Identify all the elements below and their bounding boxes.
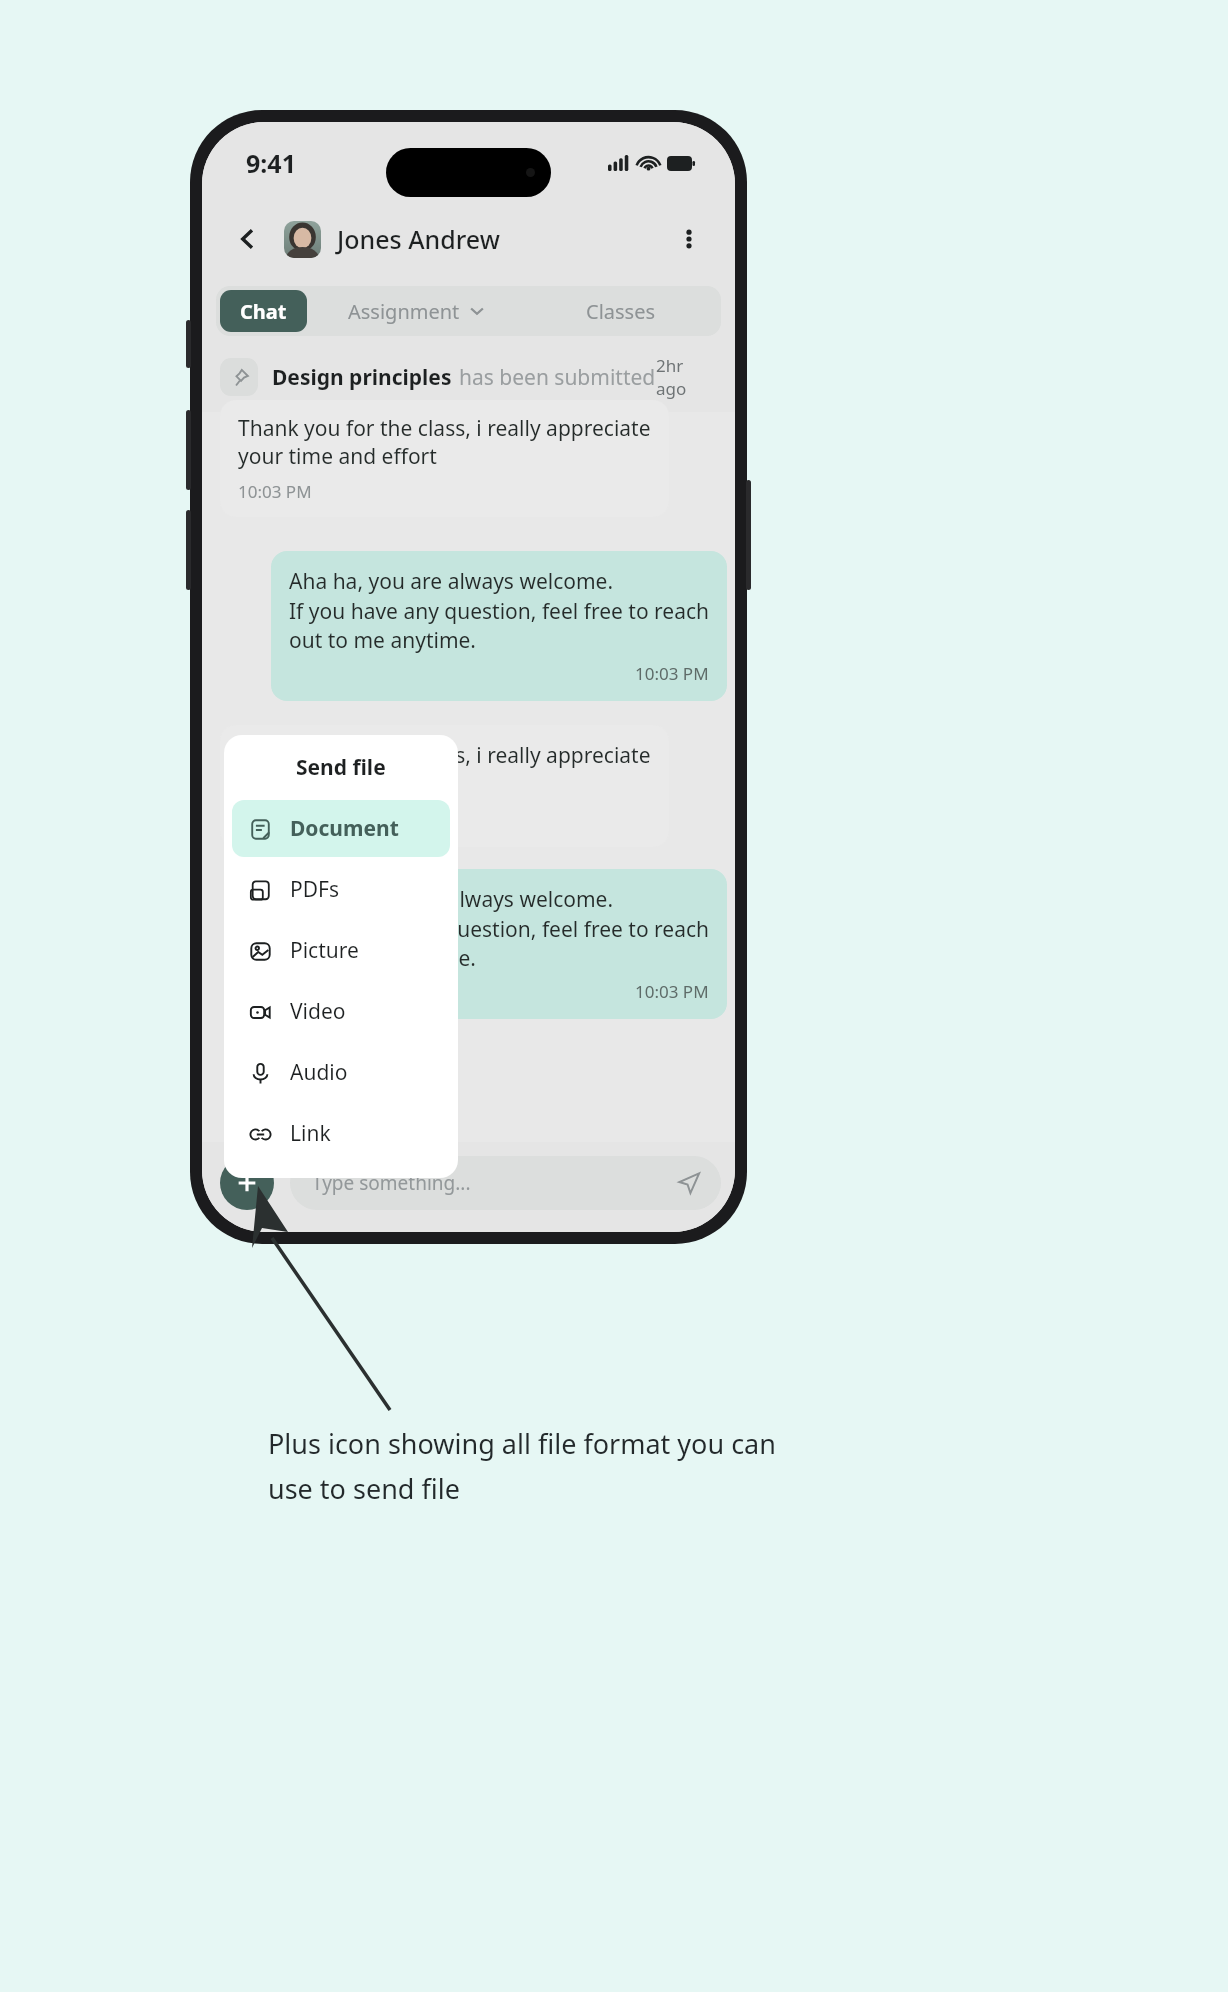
- staticText: PDFs: [290, 875, 339, 904]
- staticText: Design principles: [272, 363, 452, 392]
- button[interactable]: Thank you for the class, i really apprec…: [220, 400, 669, 517]
- staticText: 10:03 PM: [238, 480, 312, 503]
- staticText: Thank you for the class, i really apprec…: [238, 741, 651, 797]
- staticText: 10:03 PM: [635, 662, 709, 685]
- staticText: Thank you for the class, i really apprec…: [238, 414, 651, 470]
- button[interactable]: More options: [669, 219, 709, 259]
- button[interactable]: Aha ha, you are always welcome. If you h…: [271, 551, 727, 701]
- button[interactable]: Aha ha, you are always welcome. If you h…: [271, 869, 727, 1019]
- staticText: 9:41: [246, 146, 296, 180]
- staticText: Audio: [290, 1058, 348, 1087]
- button[interactable]: Link: [232, 1105, 450, 1162]
- staticText: Document: [290, 814, 399, 843]
- staticText: Link: [290, 1119, 331, 1148]
- staticText: use to send file: [268, 1470, 460, 1507]
- button[interactable]: PDFs: [232, 861, 450, 918]
- button[interactable]: Send: [673, 1167, 705, 1199]
- button[interactable]: Assignment: [311, 286, 521, 336]
- button[interactable]: Chat: [220, 290, 307, 332]
- button[interactable]: Add attachment: [220, 1156, 274, 1210]
- staticText: Video: [290, 997, 346, 1026]
- button[interactable]: Design principles: [220, 354, 717, 400]
- staticText: Chat: [240, 298, 287, 325]
- button[interactable]: Video: [232, 983, 450, 1040]
- button[interactable]: Audio: [232, 1044, 450, 1101]
- staticText: Classes: [586, 298, 656, 325]
- staticText: Aha ha, you are always welcome. If you h…: [289, 567, 709, 654]
- staticText: Assignment: [348, 298, 460, 325]
- staticText: Send file: [296, 753, 386, 782]
- staticText: Picture: [290, 936, 359, 965]
- button[interactable]: Classes: [521, 286, 721, 336]
- button[interactable]: Document: [232, 800, 450, 857]
- staticText: has been submitted: [459, 363, 656, 392]
- staticText: Jones Andrew: [337, 222, 500, 256]
- staticText: Type something...: [312, 1170, 471, 1196]
- staticText: 2hr ago: [656, 354, 717, 400]
- button[interactable]: Back: [228, 219, 268, 259]
- button[interactable]: Picture: [232, 922, 450, 979]
- staticText: 10:03 PM: [635, 980, 709, 1003]
- button[interactable]: Profile photo: [284, 221, 321, 258]
- button[interactable]: Type something...: [290, 1156, 721, 1210]
- button[interactable]: Thank you for the class, i really apprec…: [220, 725, 669, 847]
- staticText: Aha ha, you are always welcome. If you h…: [289, 885, 709, 972]
- staticText: Plus icon showing all file format you ca…: [268, 1425, 776, 1462]
